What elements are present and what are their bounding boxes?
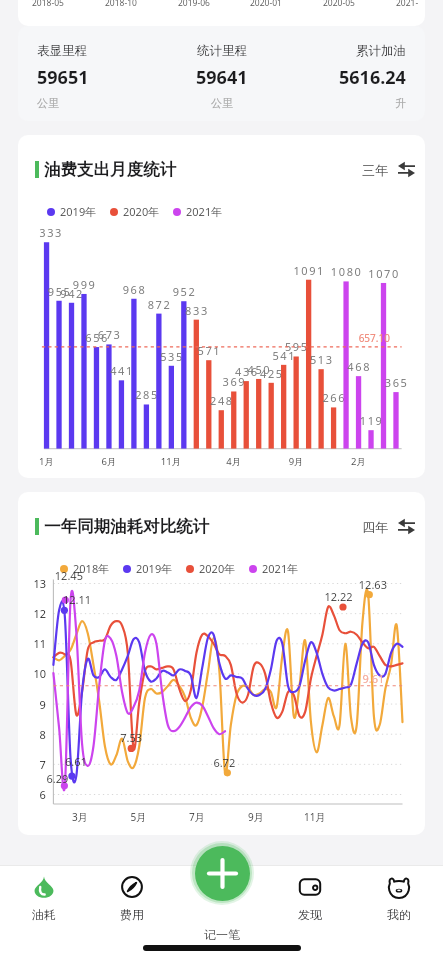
staticText: 2019年 [136, 561, 173, 576]
button[interactable]: 四年 [356, 510, 421, 543]
button[interactable]: 费用 [88, 876, 176, 924]
button[interactable]: 我的 [354, 876, 443, 924]
staticText: 记一笔 [204, 927, 240, 942]
staticText: 2019年 [60, 204, 97, 219]
button[interactable]: 记一笔 Add record [195, 846, 250, 901]
staticText: 费用 [120, 907, 144, 922]
staticText: 公里 [211, 96, 233, 110]
staticText: 2018-10 [105, 0, 137, 9]
staticText: 油耗 [32, 907, 56, 922]
staticText: 5616.24 [339, 65, 406, 90]
staticText: 2021年 [262, 561, 299, 576]
staticText: 公里 [37, 96, 59, 110]
staticText: 2021- [396, 0, 419, 9]
staticText: 升 [395, 96, 406, 110]
staticText: 油费支出月度统计 [44, 159, 176, 180]
other: Switch range [398, 518, 415, 535]
staticText: 累计加油 [356, 43, 406, 59]
staticText: 2020年 [199, 561, 236, 576]
staticText: 一年同期油耗对比统计 [44, 516, 209, 537]
staticText: 59651 [37, 65, 89, 90]
staticText: 2018-05 [32, 0, 64, 9]
staticText: 我的 [387, 907, 411, 922]
staticText: 2018年 [73, 561, 110, 576]
staticText: 59641 [196, 65, 248, 90]
staticText: 2021年 [186, 204, 223, 219]
button[interactable]: 发现 [265, 876, 354, 924]
staticText: 2020-01 [250, 0, 282, 9]
staticText: 统计里程 [197, 43, 247, 59]
staticText: 发现 [298, 907, 322, 922]
button[interactable]: 油耗 [0, 876, 88, 924]
other: Switch range [398, 161, 415, 178]
staticText: 表显里程 [37, 43, 87, 59]
staticText: 2020-05 [323, 0, 355, 9]
staticText: 四年 [362, 519, 388, 535]
staticText: 2020年 [123, 204, 160, 219]
button[interactable]: 三年 [356, 153, 421, 186]
staticText: 2019-06 [178, 0, 210, 9]
staticText: 三年 [362, 162, 388, 178]
